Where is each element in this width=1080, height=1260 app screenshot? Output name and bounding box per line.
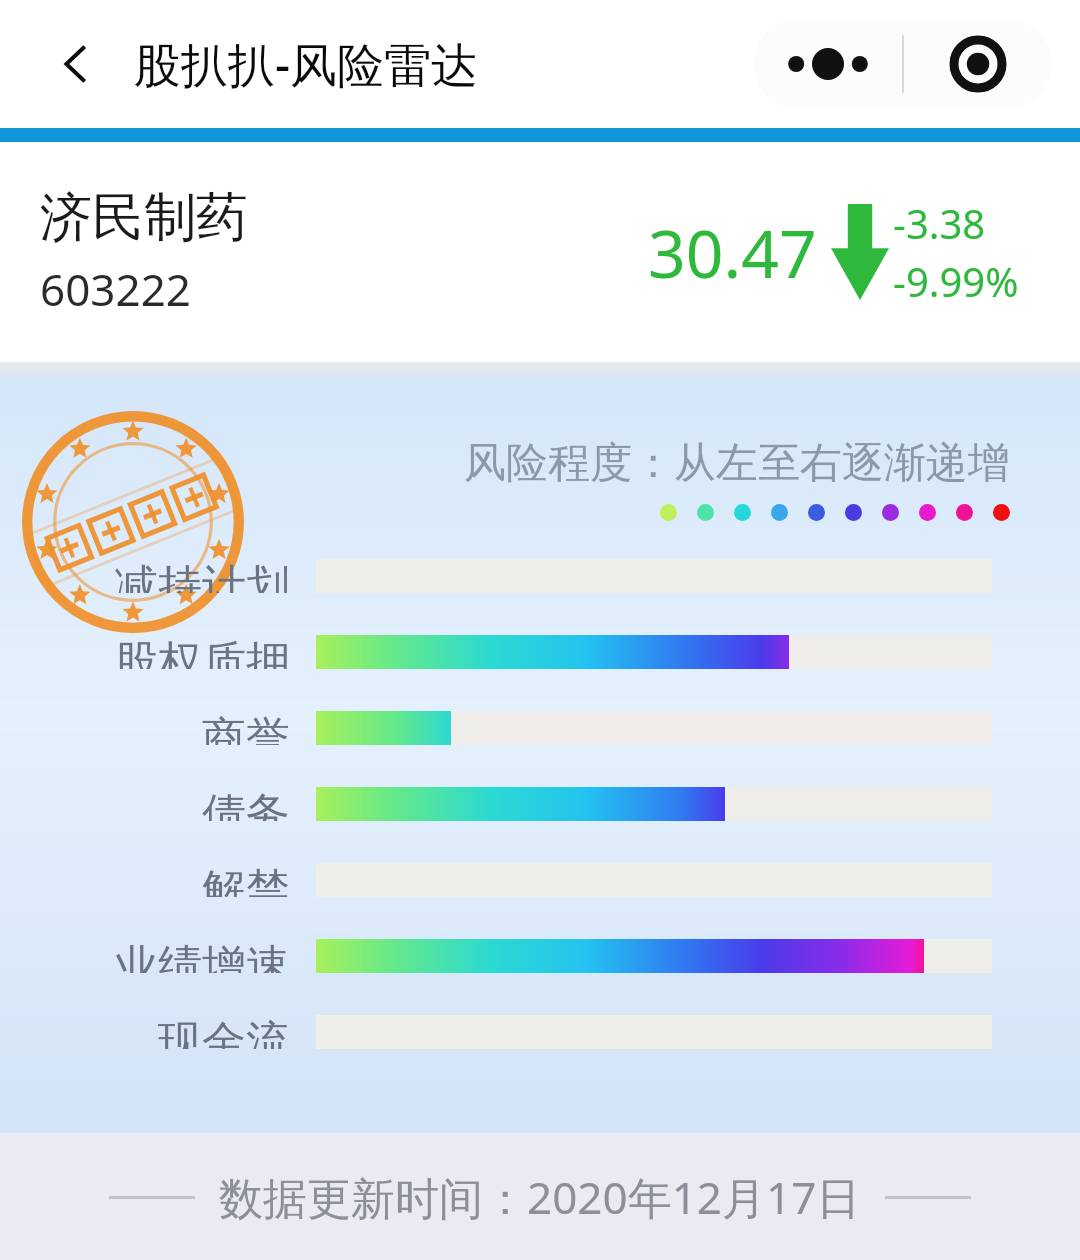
staticText: 解禁 bbox=[202, 863, 290, 897]
staticText: 数据更新时间：2020年12月17日 bbox=[219, 1167, 861, 1227]
button[interactable]: 商誉 bbox=[0, 711, 1080, 745]
staticText: 股权质押 bbox=[114, 635, 290, 669]
button[interactable]: 债务 bbox=[0, 787, 1080, 821]
staticText: 商誉 bbox=[202, 711, 290, 745]
button[interactable]: 现金流 bbox=[0, 1015, 1080, 1049]
staticText: 济民制药 bbox=[40, 185, 248, 251]
staticText: 现金流 bbox=[158, 1015, 290, 1049]
staticText: 股扒扒-风险雷达 bbox=[134, 32, 479, 96]
button[interactable]: 减持计划 bbox=[0, 559, 1080, 593]
staticText: -9.99% bbox=[893, 254, 1019, 308]
staticText: 603222 bbox=[40, 259, 192, 319]
staticText: 30.47 bbox=[648, 207, 817, 297]
button[interactable]: Back bbox=[40, 28, 112, 100]
staticText: 风险程度：从左至右逐渐递增 bbox=[464, 437, 1010, 490]
staticText: -3.38 bbox=[893, 196, 986, 250]
button[interactable]: More bbox=[754, 19, 902, 109]
button[interactable]: 解禁 bbox=[0, 863, 1080, 897]
staticText: 债务 bbox=[202, 787, 290, 821]
button[interactable]: 股权质押 bbox=[0, 635, 1080, 669]
button[interactable]: Target bbox=[904, 19, 1052, 109]
staticText: 减持计划 bbox=[114, 559, 290, 593]
staticText: 业绩增速 bbox=[114, 939, 290, 973]
button[interactable]: 业绩增速 bbox=[0, 939, 1080, 973]
